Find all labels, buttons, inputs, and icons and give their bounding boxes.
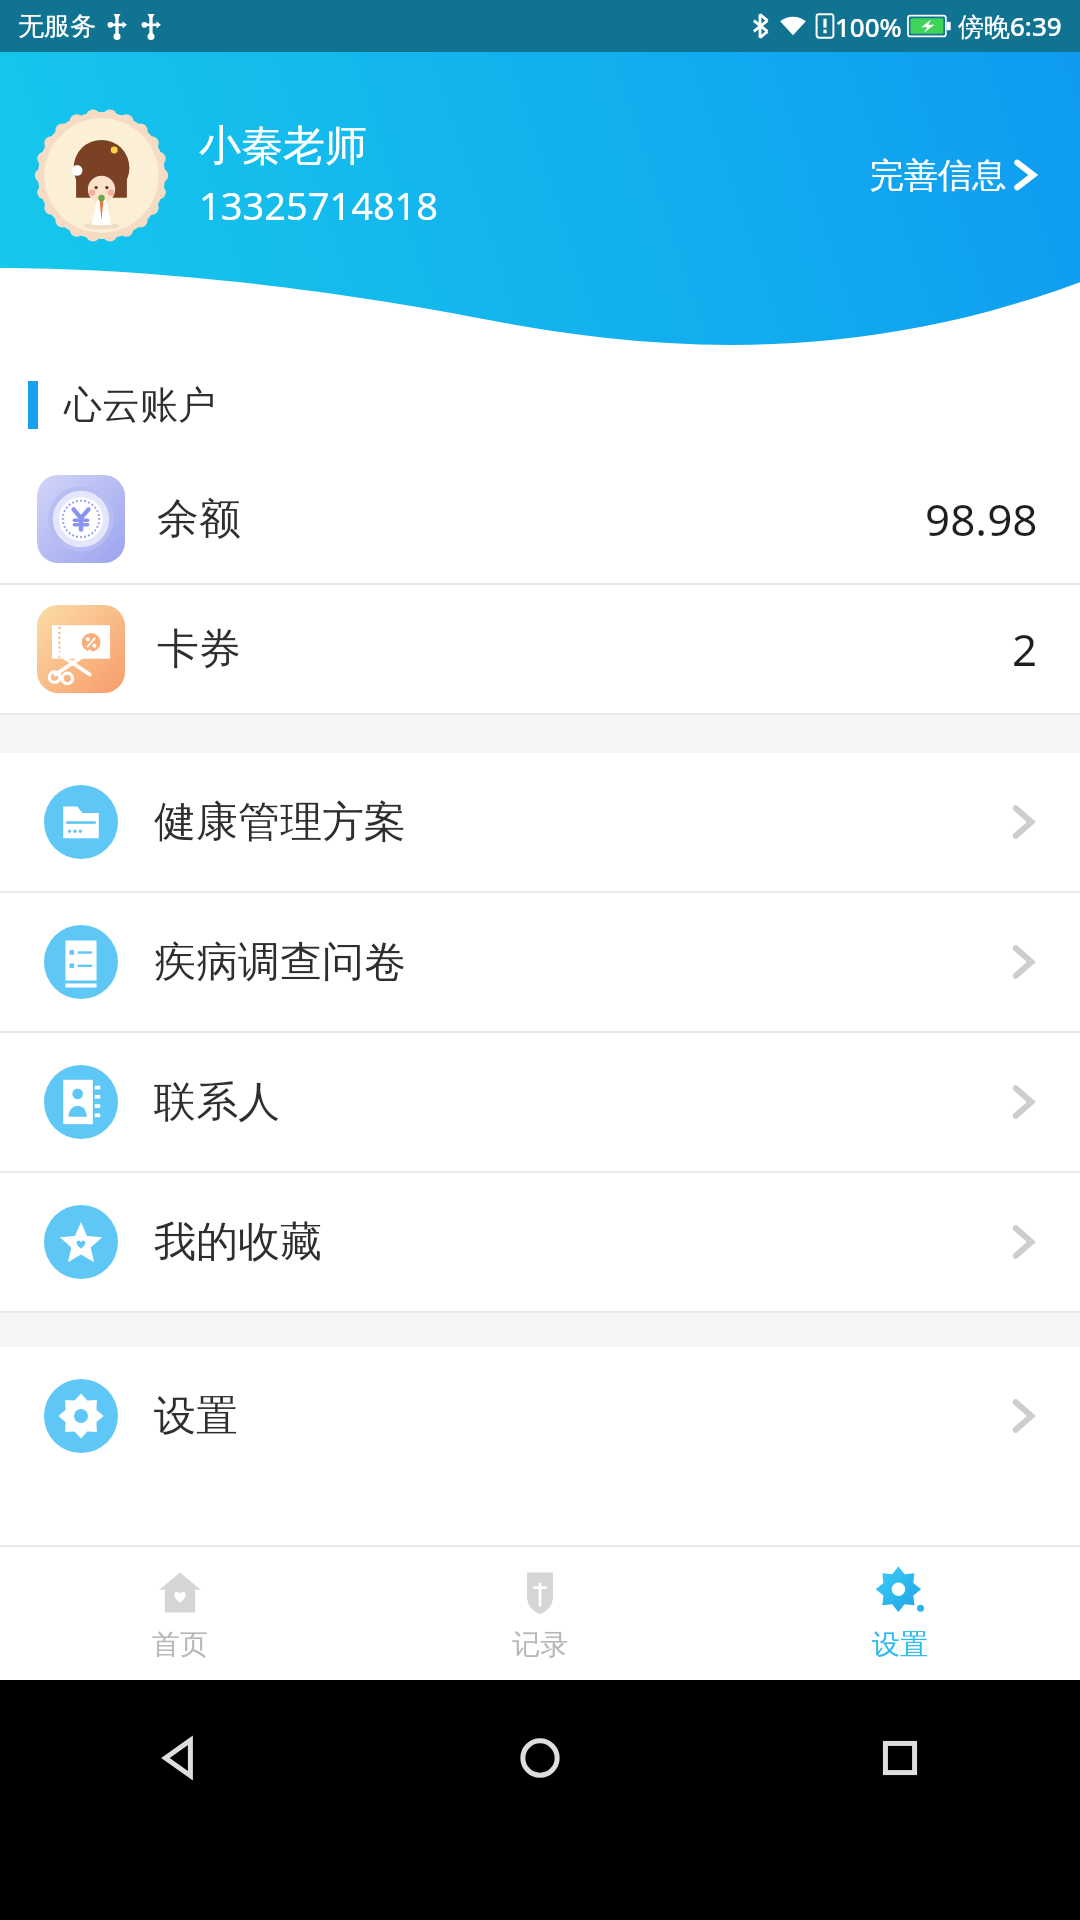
staticText: 完善信息	[870, 154, 1006, 197]
staticText: 无服务	[18, 10, 96, 43]
staticText: 心云账户	[64, 381, 216, 429]
button[interactable]: 记录	[360, 1547, 720, 1680]
staticText: 卡券	[157, 623, 241, 676]
staticText: 2	[1012, 619, 1038, 679]
button[interactable]: 首页	[0, 1547, 360, 1680]
button[interactable]: 我的收藏	[0, 1173, 1080, 1311]
button[interactable]: 联系人	[0, 1033, 1080, 1171]
staticText: 首页	[152, 1627, 208, 1662]
button[interactable]: Home	[360, 1708, 720, 1808]
staticText: 我的收藏	[154, 1216, 322, 1269]
button[interactable]: 设置	[0, 1347, 1080, 1485]
staticText: 13325714818	[199, 179, 439, 231]
button[interactable]: Back	[0, 1708, 360, 1808]
button[interactable]: 完善信息	[848, 139, 1060, 211]
button[interactable]: 疾病调查问卷	[0, 893, 1080, 1031]
staticText: 设置	[872, 1627, 928, 1662]
staticText: 余额	[157, 493, 241, 546]
staticText: 疾病调查问卷	[154, 936, 406, 989]
staticText: 98.98	[925, 489, 1038, 549]
staticText: 记录	[512, 1627, 568, 1662]
staticText: 小秦老师	[199, 120, 367, 173]
button[interactable]: 卡券	[0, 585, 1080, 713]
staticText: 傍晚6:39	[958, 8, 1062, 44]
staticText: 健康管理方案	[154, 796, 406, 849]
staticText: 设置	[154, 1390, 238, 1443]
button[interactable]: 设置	[720, 1547, 1080, 1680]
button[interactable]: 余额	[0, 455, 1080, 583]
button[interactable]: 健康管理方案	[0, 753, 1080, 891]
staticText: 100%	[835, 9, 902, 44]
staticText: 联系人	[154, 1076, 280, 1129]
button[interactable]: Recents	[720, 1708, 1080, 1808]
